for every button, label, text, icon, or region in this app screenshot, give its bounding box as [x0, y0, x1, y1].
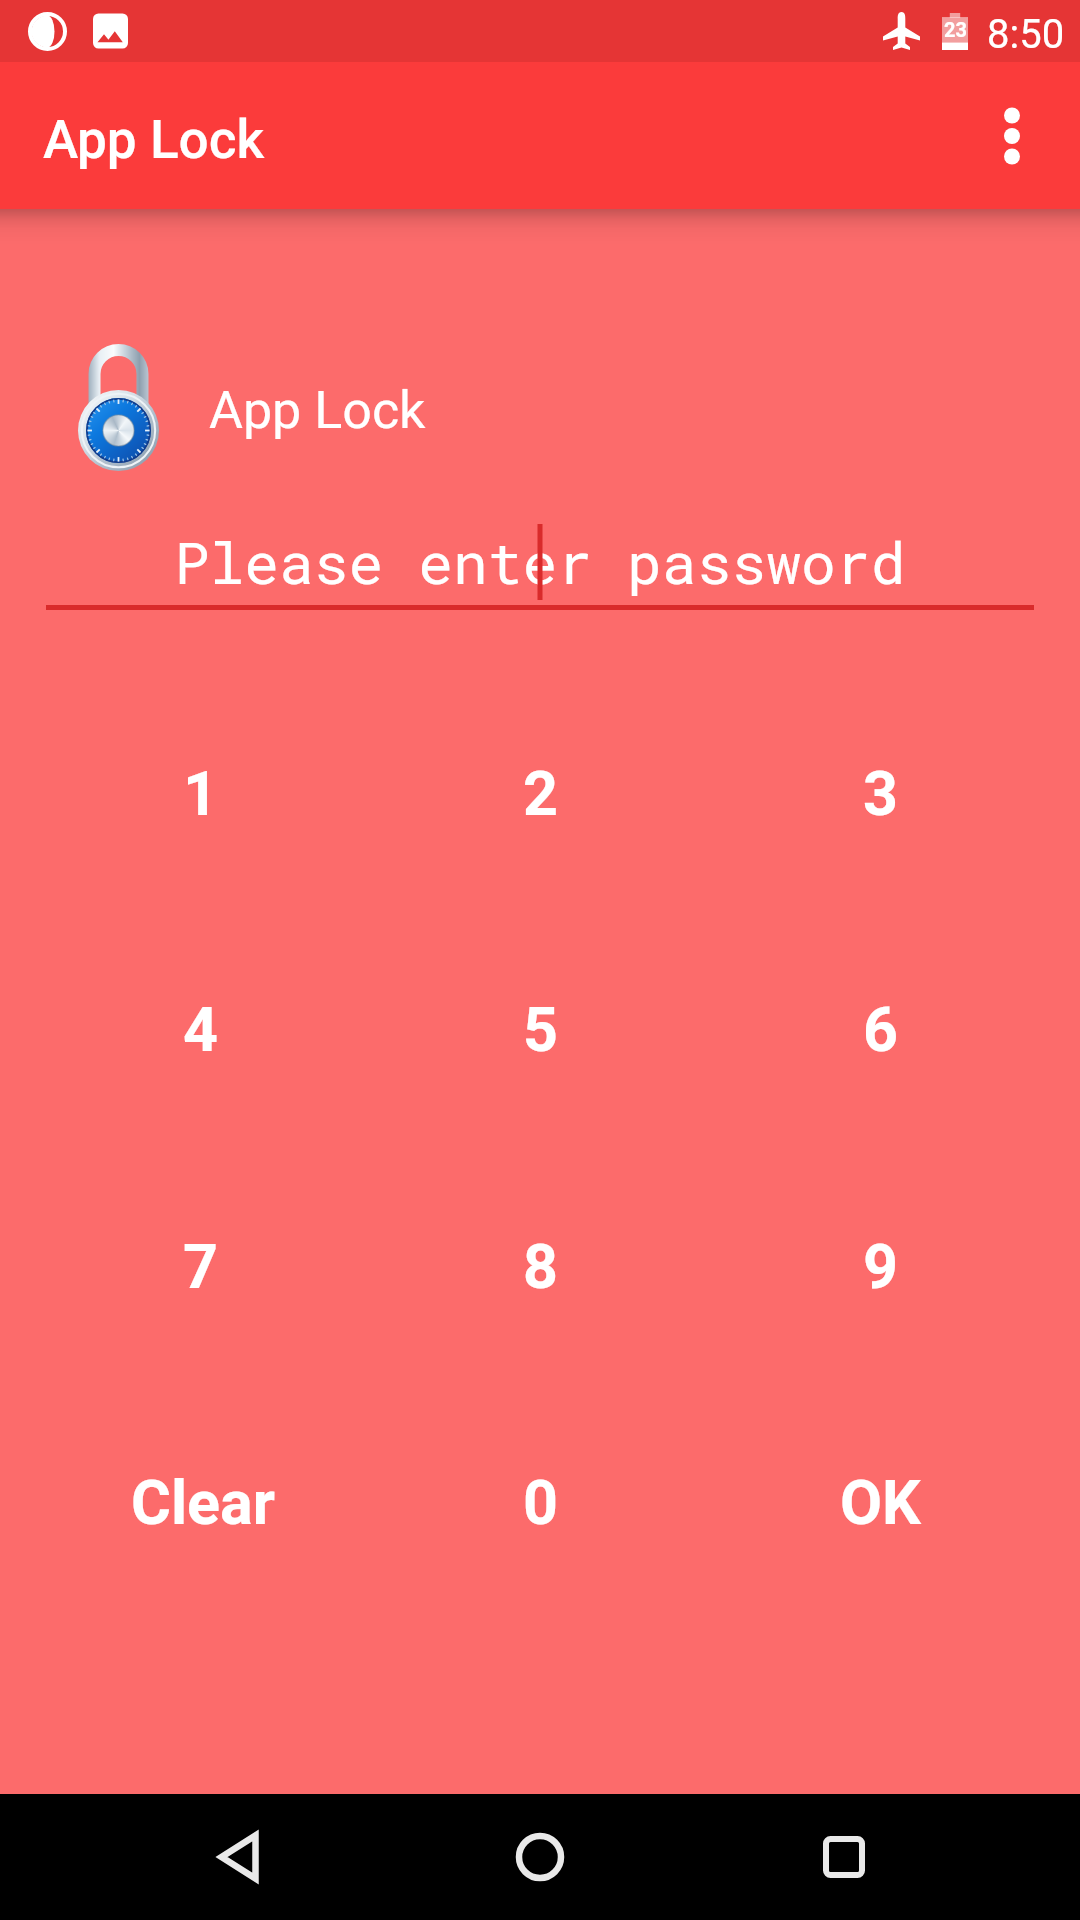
button[interactable]: Home	[485, 1802, 595, 1912]
staticText: 3	[863, 758, 898, 829]
button[interactable]: 1	[30, 698, 370, 888]
staticText: App Lock	[43, 109, 265, 171]
staticText: 8:50	[987, 11, 1065, 58]
staticText: 2	[523, 758, 558, 829]
staticText: 8	[523, 1231, 558, 1302]
button[interactable]: 4	[30, 934, 370, 1124]
button[interactable]: Clear	[33, 1407, 373, 1597]
button[interactable]: Recents	[789, 1802, 899, 1912]
button[interactable]: 8	[370, 1171, 710, 1361]
button[interactable]: 0	[370, 1407, 710, 1597]
staticText: App Lock	[209, 380, 426, 441]
staticText: 1	[183, 758, 218, 829]
button[interactable]: 2	[370, 698, 710, 888]
button[interactable]: 5	[370, 934, 710, 1124]
button[interactable]: More options	[962, 86, 1062, 186]
button[interactable]: OK	[710, 1407, 1050, 1597]
button[interactable]: 7	[30, 1171, 370, 1361]
staticText: Clear	[131, 1467, 276, 1538]
staticText: 5	[523, 994, 558, 1065]
staticText: 0	[523, 1467, 558, 1538]
staticText: 7	[183, 1231, 218, 1302]
button[interactable]: Please enter password	[46, 510, 1034, 610]
staticText: 23	[944, 18, 967, 41]
button[interactable]: 9	[710, 1171, 1050, 1361]
button[interactable]: 3	[710, 698, 1050, 888]
staticText: 6	[863, 994, 898, 1065]
button[interactable]: Back	[185, 1802, 295, 1912]
staticText: Please enter password	[46, 523, 1034, 599]
staticText: 4	[183, 994, 218, 1065]
staticText: 9	[863, 1231, 898, 1302]
button[interactable]: 6	[710, 934, 1050, 1124]
staticText: OK	[840, 1467, 921, 1538]
